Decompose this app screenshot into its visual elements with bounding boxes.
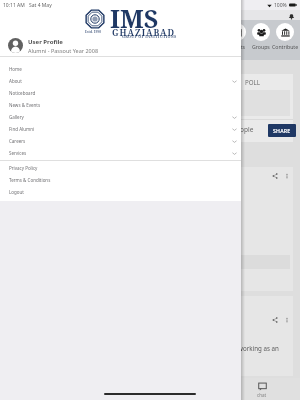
staticText: News & Events — [9, 102, 41, 108]
staticText: Events — [229, 43, 246, 50]
button[interactable]: Terms & Conditions — [0, 174, 241, 186]
staticText: Estd. 1990 — [85, 30, 101, 34]
staticText: Logout — [9, 189, 24, 195]
button[interactable]: Find Alumni — [0, 123, 241, 135]
staticText: Gallery — [9, 114, 24, 120]
staticText: Groups — [252, 43, 270, 50]
button[interactable]: Chat — [252, 382, 272, 398]
staticText: chat — [257, 392, 267, 398]
button[interactable]: Careers — [0, 135, 241, 147]
button[interactable]: About — [0, 75, 241, 87]
button[interactable]: Gallery — [0, 111, 241, 123]
staticText: Voted by 24 people — [195, 125, 254, 134]
staticText: POLL — [245, 78, 261, 86]
staticText: Contribute — [272, 43, 299, 50]
staticText: About — [9, 78, 22, 84]
staticText: User Profile — [28, 38, 63, 46]
button[interactable]: Noticeboard — [0, 87, 241, 99]
staticText: IMS — [110, 1, 159, 30]
staticText: SHARE — [273, 127, 291, 134]
button[interactable]: News & Events — [0, 99, 241, 111]
staticText: Find Alumni — [9, 126, 35, 132]
staticText: Terms & Conditions — [9, 177, 51, 183]
staticText: Privacy Policy — [9, 165, 38, 171]
button[interactable]: User Profile — [0, 34, 241, 57]
staticText: Lorem ipsum has started working as an — [164, 344, 279, 352]
staticText: Careers — [9, 138, 26, 144]
button[interactable]: SHARE — [268, 124, 296, 137]
button[interactable]: More options — [281, 314, 292, 325]
staticText: 10:11 AM — [3, 2, 25, 9]
staticText: GROUP OF INSTITUTIONS — [122, 34, 177, 39]
staticText: Services — [9, 150, 27, 156]
staticText: GHAZIABAD — [112, 27, 175, 39]
button[interactable]: Groups — [244, 23, 278, 53]
button[interactable]: Contribute — [268, 23, 300, 53]
button[interactable]: Services — [0, 147, 241, 159]
button[interactable]: Notifications — [287, 12, 296, 21]
button[interactable]: Privacy Policy — [0, 162, 241, 174]
button[interactable]: Home gesture bar — [104, 393, 196, 395]
staticText: Alumni - Passout Year 2008 — [28, 47, 99, 54]
staticText: 100% — [274, 2, 287, 9]
button[interactable]: Logout — [0, 186, 241, 198]
button[interactable]: Share — [269, 314, 280, 325]
button[interactable]: Share — [269, 170, 280, 181]
button[interactable]: Events — [220, 23, 254, 53]
button[interactable]: More options — [281, 170, 292, 181]
staticText: Sat 4 May — [29, 2, 52, 9]
staticText: Home — [9, 66, 22, 72]
button[interactable]: Home — [0, 63, 241, 75]
staticText: Noticeboard — [9, 90, 36, 96]
